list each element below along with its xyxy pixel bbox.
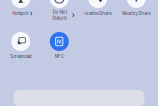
staticText: Hotspot [12,11,28,16]
staticText: realme Share [84,11,111,16]
staticText: Disturb [52,15,67,21]
staticText: Nearby Share [122,11,150,16]
button[interactable]: Screencast [0,0,158,106]
button[interactable]: Hotspot [0,0,158,106]
button[interactable]: realme Share [0,0,158,106]
staticText: NFC [55,54,64,59]
staticText: Screencast [10,54,31,59]
button[interactable]: NFC [0,0,158,106]
button[interactable]: Nearby Share [0,0,158,106]
button[interactable]: Do Not [0,0,158,106]
staticText: Do Not [53,10,67,15]
